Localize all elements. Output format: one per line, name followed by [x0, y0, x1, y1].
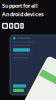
staticText: Support for all — [2, 2, 38, 9]
staticText: Android devices — [2, 10, 44, 18]
